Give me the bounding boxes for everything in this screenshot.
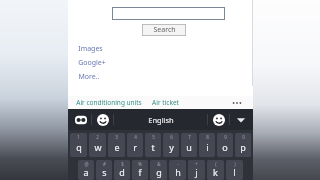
button[interactable]: % (132, 160, 148, 180)
button[interactable]: 3 (108, 133, 125, 157)
staticText: 4 (134, 134, 137, 140)
staticText: & (157, 161, 161, 167)
staticText: i (206, 141, 209, 153)
staticText: Search (153, 25, 176, 35)
staticText: Air ticket (152, 98, 179, 107)
button[interactable]: 5 (145, 133, 161, 157)
staticText: s (102, 166, 107, 178)
staticText: Google+ (78, 58, 106, 68)
button[interactable]: # (96, 160, 112, 180)
button[interactable]: 0 (235, 133, 251, 157)
button[interactable]: Air ticket (152, 98, 179, 107)
button[interactable]: ) (226, 160, 243, 180)
button[interactable]: More.. (78, 72, 100, 82)
button[interactable]: Hide keyboard (234, 113, 248, 127)
staticText: ( (215, 161, 217, 167)
staticText: - (177, 161, 179, 167)
staticText: a (83, 166, 89, 178)
button[interactable]: Images (78, 44, 103, 54)
staticText: English (148, 115, 174, 125)
staticText: # (103, 161, 106, 167)
staticText: u (186, 141, 192, 153)
staticText: h (175, 166, 181, 178)
staticText: f (138, 166, 142, 178)
button[interactable]: Voice typing (73, 112, 88, 127)
staticText: r (133, 141, 137, 153)
button[interactable]: 2 (89, 133, 106, 157)
staticText: More.. (78, 72, 100, 82)
button[interactable]: Google+ (78, 58, 106, 68)
button[interactable]: - (169, 160, 186, 180)
staticText: 5 (152, 134, 155, 140)
staticText: ) (234, 161, 236, 167)
button[interactable]: Stickers (211, 112, 226, 127)
button[interactable]: + (188, 160, 205, 180)
staticText: t (151, 141, 155, 153)
button[interactable]: English (114, 109, 207, 130)
staticText: q (76, 141, 82, 153)
staticText: o (222, 141, 228, 153)
button[interactable]: $ (114, 160, 130, 180)
staticText: p (240, 141, 246, 153)
staticText: 2 (96, 134, 99, 140)
staticText: y (169, 141, 174, 153)
staticText: j (195, 166, 198, 178)
staticText: 7 (188, 134, 191, 140)
button[interactable]: 6 (163, 133, 179, 157)
staticText: 0 (242, 134, 245, 140)
button[interactable]: 9 (217, 133, 233, 157)
staticText: + (195, 161, 198, 167)
staticText: $ (121, 161, 124, 167)
staticText: 6 (170, 134, 173, 140)
staticText: Air conditioning units (76, 98, 142, 107)
button[interactable]: ( (207, 160, 224, 180)
button[interactable]: @ (78, 160, 94, 180)
staticText: g (156, 166, 162, 178)
staticText: d (119, 166, 125, 178)
button[interactable]: More suggestions (230, 96, 244, 109)
button[interactable] (112, 7, 225, 20)
staticText: w (94, 141, 102, 153)
staticText: Images (78, 44, 103, 54)
button[interactable]: 7 (181, 133, 197, 157)
button[interactable]: 1 (70, 133, 87, 157)
staticText: 8 (206, 134, 209, 140)
staticText: l (233, 166, 236, 178)
button[interactable]: Search (142, 24, 186, 36)
button[interactable]: 8 (199, 133, 215, 157)
staticText: % (138, 161, 142, 167)
staticText: @ (84, 161, 89, 167)
button[interactable]: & (150, 160, 167, 180)
staticText: 1 (77, 134, 80, 140)
staticText: 3 (115, 134, 118, 140)
staticText: 9 (224, 134, 227, 140)
button[interactable]: Air conditioning units (76, 98, 142, 107)
staticText: e (114, 141, 120, 153)
button[interactable]: Emoji (95, 112, 110, 127)
staticText: k (213, 166, 218, 178)
button[interactable]: 4 (127, 133, 143, 157)
